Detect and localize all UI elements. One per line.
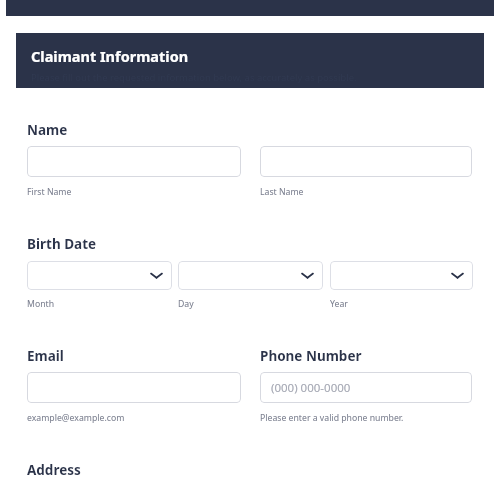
staticText: Day: [178, 298, 194, 310]
staticText: (000) 000-0000: [271, 380, 351, 396]
button[interactable]: Email input: [27, 372, 241, 403]
button[interactable]: Select birth month: [27, 261, 172, 290]
staticText: Year: [330, 298, 348, 310]
staticText: example@example.com: [27, 412, 125, 424]
staticText: Month: [27, 298, 55, 310]
staticText: First Name: [27, 186, 72, 198]
staticText: Phone Number: [260, 347, 362, 365]
button[interactable]: First Name input: [27, 146, 241, 177]
button[interactable]: Phone number input: [260, 372, 472, 403]
staticText: Email: [27, 347, 64, 365]
staticText: Address: [27, 461, 81, 479]
staticText: Please enter a valid phone number.: [260, 412, 404, 424]
staticText: Name: [27, 121, 68, 139]
button[interactable]: Claimant Information: [16, 33, 484, 88]
button[interactable]: Last Name input: [260, 146, 472, 177]
staticText: Claimant Information: [31, 46, 189, 66]
staticText: Last Name: [260, 186, 304, 198]
button[interactable]: Select birth day: [178, 261, 323, 290]
button[interactable]: Select birth year: [330, 261, 473, 290]
staticText: Birth Date: [27, 235, 97, 253]
